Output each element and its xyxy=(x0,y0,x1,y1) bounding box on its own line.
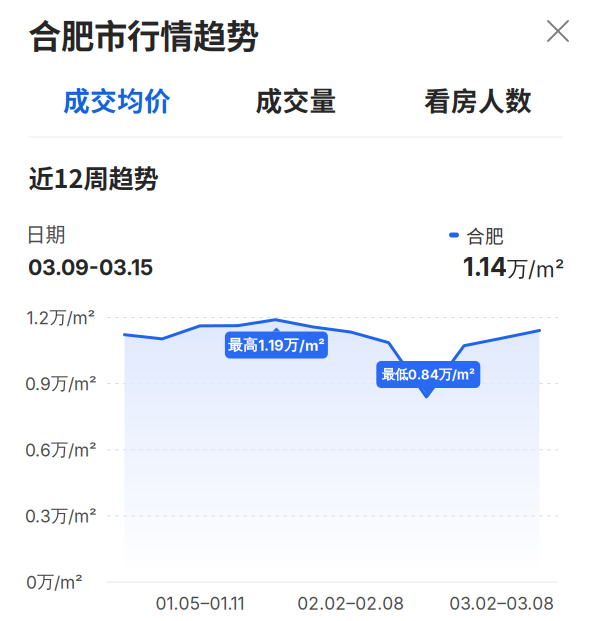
button[interactable]: 关闭 xyxy=(537,10,579,52)
staticText: 02.02–02.08 xyxy=(297,593,404,614)
staticText: 成交均价 xyxy=(63,80,171,118)
staticText: 1.14 xyxy=(463,252,507,282)
staticText: 近12周趋势 xyxy=(28,159,158,195)
staticText: 成交量 xyxy=(255,80,336,118)
staticText: 03.09-03.15 xyxy=(28,255,153,280)
staticText: 01.05–01.11 xyxy=(155,593,244,614)
staticText: 0.6万/m² xyxy=(25,439,97,461)
staticText: 合肥 xyxy=(466,221,504,248)
button[interactable]: 成交量 xyxy=(206,75,385,123)
button[interactable]: 看房人数 xyxy=(388,75,567,123)
staticText: 看房人数 xyxy=(424,80,532,118)
staticText: 0.3万/m² xyxy=(25,505,97,527)
staticText: 最低0.84万/m² xyxy=(382,366,475,383)
staticText: 万/m² xyxy=(507,256,564,282)
staticText: 0.9万/m² xyxy=(25,373,97,394)
staticText: 1.2万/m² xyxy=(26,307,95,328)
staticText: 日期 xyxy=(25,219,65,248)
staticText: 最高1.19万/m² xyxy=(228,336,325,354)
staticText: 0万/m² xyxy=(26,571,83,593)
button[interactable]: 成交均价 xyxy=(27,75,206,123)
staticText: 合肥市行情趋势 xyxy=(28,10,259,58)
staticText: 03.02–03.08 xyxy=(449,593,554,614)
